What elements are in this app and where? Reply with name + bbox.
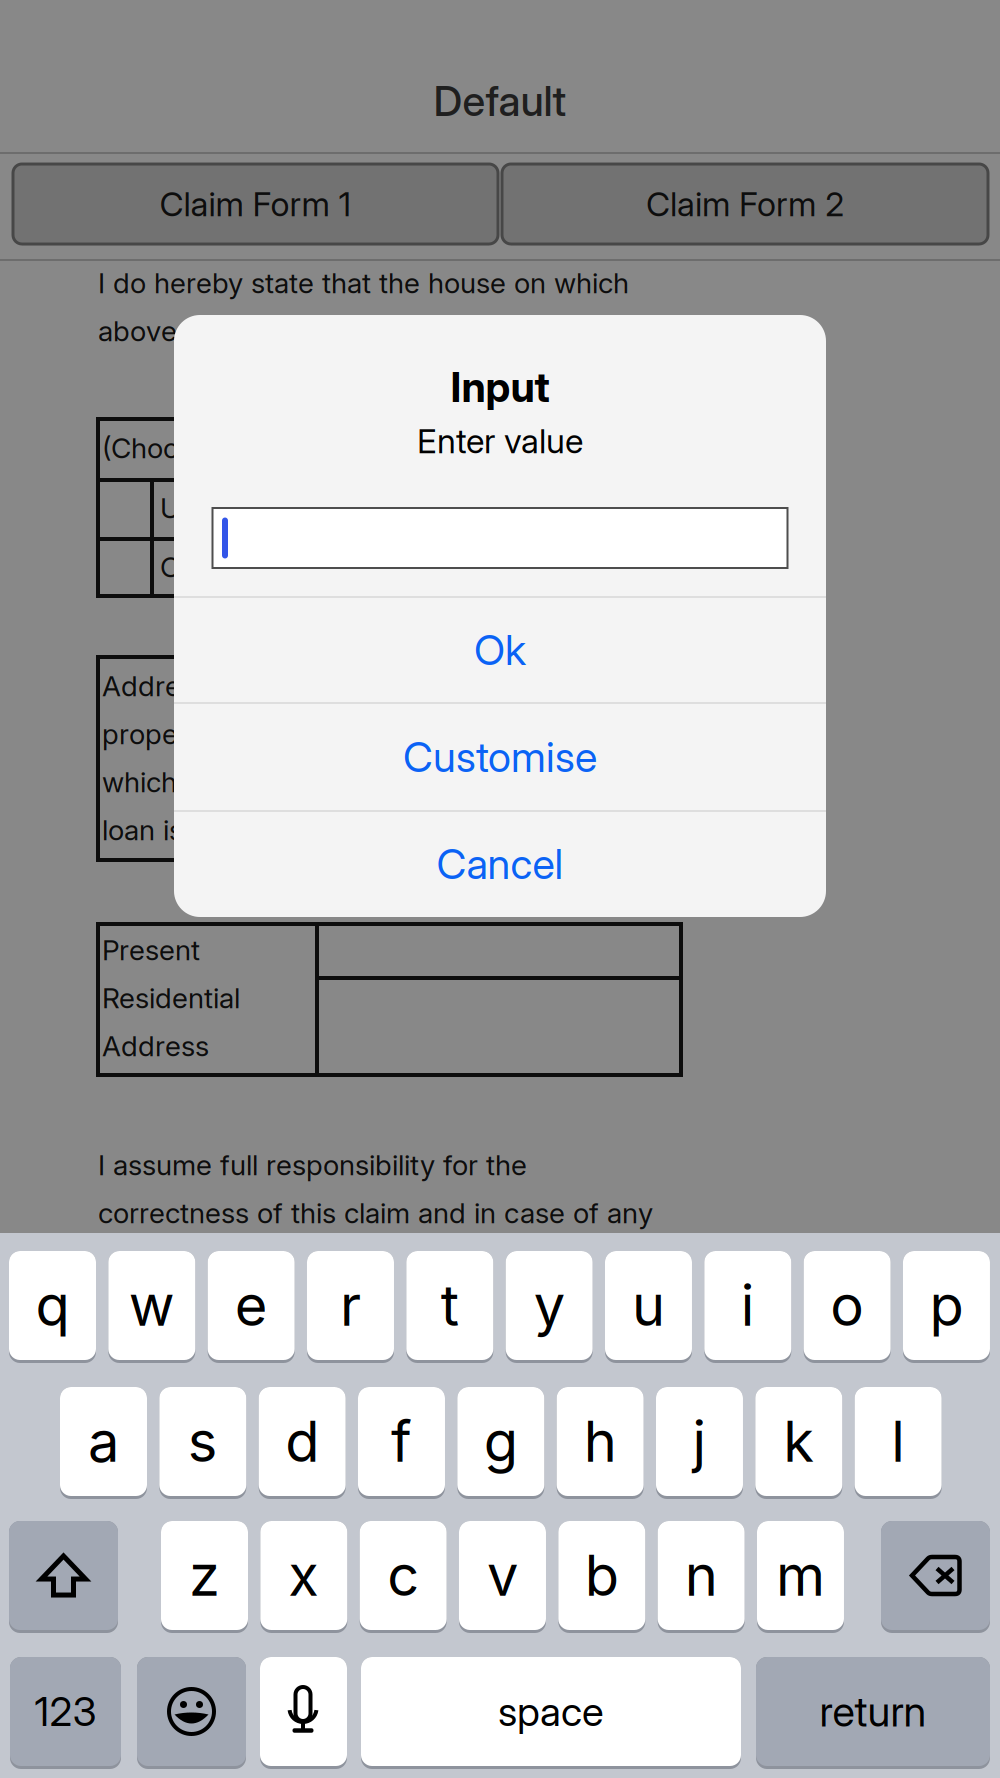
staticText: j — [692, 1408, 706, 1475]
button[interactable]: 123 — [10, 1657, 121, 1769]
button[interactable]: l — [855, 1387, 942, 1499]
staticText: w — [129, 1272, 175, 1339]
button[interactable]: p — [903, 1251, 990, 1363]
button[interactable]: f — [358, 1387, 445, 1499]
staticText: h — [584, 1408, 617, 1475]
staticText: Address of the — [102, 669, 292, 703]
staticText: q — [35, 1272, 69, 1339]
staticText: c — [387, 1542, 419, 1609]
button[interactable]: Cancel — [174, 811, 826, 917]
staticText: r — [340, 1272, 361, 1339]
staticText: Customise — [403, 732, 597, 782]
staticText: i — [741, 1272, 755, 1339]
button[interactable]: k — [755, 1387, 842, 1499]
staticText: Input — [450, 362, 549, 412]
staticText: o — [830, 1272, 864, 1339]
button[interactable]: Dictation — [260, 1657, 347, 1769]
staticText: Present — [102, 933, 200, 967]
staticText: y — [534, 1272, 565, 1339]
staticText: 123 — [34, 1687, 96, 1736]
staticText: return — [819, 1686, 926, 1736]
button[interactable]: d — [259, 1387, 346, 1499]
staticText: Under construction — [160, 491, 405, 525]
staticText: (Choose one) — [102, 431, 274, 465]
staticText: Claim Form 1 — [159, 184, 351, 224]
staticText: Residential — [102, 981, 240, 1015]
button[interactable]: t — [406, 1251, 493, 1363]
button[interactable]: a — [60, 1387, 147, 1499]
button[interactable]: w — [108, 1251, 195, 1363]
staticText: I assume full responsibility for the — [98, 1148, 527, 1182]
button[interactable]: Claim Form 1 — [13, 164, 498, 244]
button[interactable]: c — [360, 1521, 447, 1633]
staticText: correctness of this claim and in case of… — [98, 1196, 653, 1230]
staticText: property for — [102, 717, 256, 751]
staticText: Default — [433, 76, 566, 126]
button[interactable]: v — [459, 1521, 546, 1633]
staticText: v — [487, 1542, 518, 1609]
button[interactable]: Ok — [174, 597, 826, 703]
staticText: n — [685, 1542, 718, 1609]
staticText: a — [88, 1408, 119, 1475]
staticText: b — [585, 1542, 619, 1609]
staticText: Claim Form 2 — [646, 184, 844, 224]
button[interactable]: b — [558, 1521, 645, 1633]
staticText: Cancel — [436, 839, 563, 889]
staticText: above mentioned loan is taken, is — [98, 314, 523, 348]
button[interactable]: q — [9, 1251, 96, 1363]
staticText: x — [288, 1542, 319, 1609]
button[interactable]: x — [260, 1521, 347, 1633]
button[interactable]: Customise — [174, 703, 826, 811]
button[interactable]: e — [208, 1251, 295, 1363]
staticText: t — [441, 1272, 459, 1339]
button[interactable]: Emoji — [137, 1657, 246, 1769]
button[interactable]: r — [307, 1251, 394, 1363]
staticText: z — [189, 1542, 220, 1609]
button[interactable]: z — [161, 1521, 248, 1633]
staticText: Address — [102, 1029, 209, 1063]
button[interactable]: Claim Form 2 — [502, 164, 988, 244]
staticText: space — [498, 1687, 604, 1736]
staticText: s — [188, 1408, 218, 1475]
staticText: I do hereby state that the house on whic… — [98, 266, 629, 300]
staticText: d — [285, 1408, 319, 1475]
button[interactable]: n — [658, 1521, 745, 1633]
button[interactable]: j — [656, 1387, 743, 1499]
staticText: which the — [102, 765, 226, 799]
staticText: m — [776, 1542, 825, 1609]
button[interactable]: g — [457, 1387, 544, 1499]
button[interactable]: u — [605, 1251, 692, 1363]
staticText: u — [632, 1272, 665, 1339]
staticText: l — [891, 1408, 905, 1475]
staticText: Completed — [160, 550, 301, 584]
staticText: loan is taken — [102, 813, 261, 847]
button[interactable]: return — [756, 1657, 990, 1769]
button[interactable]: h — [557, 1387, 644, 1499]
staticText: e — [235, 1272, 268, 1339]
staticText: f — [391, 1408, 412, 1475]
button[interactable]: o — [804, 1251, 891, 1363]
button[interactable]: i — [704, 1251, 791, 1363]
staticText: Ok — [474, 625, 526, 675]
button[interactable]: y — [506, 1251, 593, 1363]
staticText: Enter value — [417, 421, 583, 461]
button[interactable]: Shift — [9, 1521, 118, 1633]
button[interactable]: m — [757, 1521, 844, 1633]
button[interactable]: space — [361, 1657, 741, 1769]
staticText: p — [929, 1272, 963, 1339]
staticText: g — [484, 1408, 518, 1475]
staticText: k — [783, 1408, 814, 1475]
button[interactable]: Delete — [881, 1521, 990, 1633]
button[interactable]: s — [159, 1387, 246, 1499]
